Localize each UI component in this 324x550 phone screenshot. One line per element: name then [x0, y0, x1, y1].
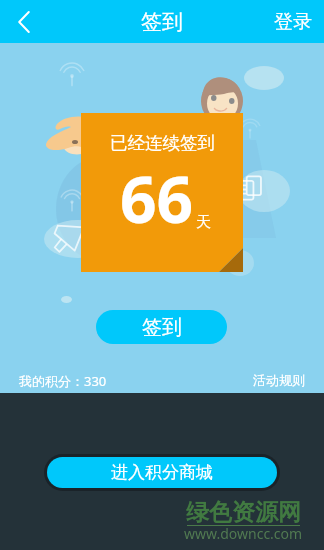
button[interactable]: Back — [0, 0, 48, 43]
staticText: www.downcc.com — [184, 524, 303, 543]
button[interactable]: 活动规则 — [253, 372, 305, 388]
staticText: 天 — [196, 213, 211, 232]
staticText: 登录 — [274, 10, 312, 33]
staticText: 绿色资源网 — [186, 498, 301, 527]
staticText: 进入积分商城 — [111, 462, 213, 483]
staticText: 签到 — [142, 315, 182, 340]
staticText: 66 — [120, 155, 194, 242]
button[interactable]: 登录 — [262, 0, 324, 43]
staticText: 签到 — [141, 9, 183, 35]
button[interactable]: 进入积分商城 — [44, 454, 280, 491]
staticText: 我的积分：330 — [19, 372, 107, 390]
staticText: 已经连续签到 — [110, 132, 215, 154]
staticText: 活动规则 — [253, 372, 305, 388]
button[interactable]: 签到 — [96, 310, 227, 344]
